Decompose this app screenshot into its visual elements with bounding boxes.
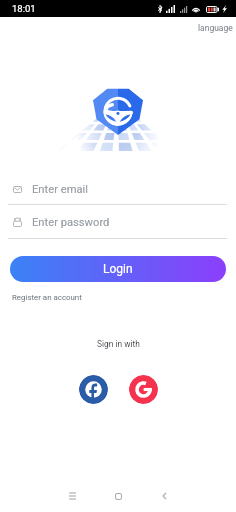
staticText: Enter password — [32, 216, 110, 229]
button[interactable]: Back — [147, 483, 181, 509]
staticText: Register an account — [12, 293, 82, 302]
staticText: Sign in with — [97, 339, 140, 349]
button[interactable]: Sign in with Facebook — [79, 375, 108, 404]
staticText: language — [198, 23, 233, 33]
staticText: Login — [103, 262, 133, 276]
button[interactable]: Home — [101, 483, 135, 509]
button[interactable]: Enter password — [0, 209, 236, 235]
button[interactable]: Register an account — [8, 291, 86, 304]
button[interactable]: Sign in with Google — [129, 375, 158, 404]
button[interactable]: language — [192, 22, 236, 35]
button[interactable]: Enter email — [0, 176, 236, 202]
staticText: Enter email — [32, 183, 88, 196]
button[interactable]: Login — [10, 256, 226, 282]
staticText: 18:01 — [12, 3, 36, 14]
button[interactable]: Recent apps — [55, 483, 89, 509]
